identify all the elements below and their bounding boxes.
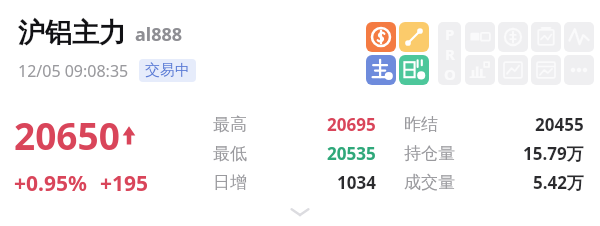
button[interactable]: 最低	[196, 139, 392, 168]
staticText: +0.95%	[14, 169, 87, 198]
staticText: 日增	[213, 172, 247, 193]
button[interactable]: Tool	[498, 22, 528, 52]
button[interactable]: 持仓量	[392, 139, 600, 168]
staticText: 20535	[327, 142, 376, 165]
button[interactable]: PRO	[438, 22, 461, 85]
staticText: 成交量	[404, 172, 455, 193]
staticText: 12/05 09:08:35	[18, 60, 129, 82]
button[interactable]: 成交量	[392, 168, 600, 197]
staticText: +195	[100, 169, 149, 198]
staticText: 5.42万	[533, 171, 584, 194]
staticText: 最低	[213, 143, 247, 164]
staticText: 最高	[213, 114, 247, 135]
button[interactable]: Tool	[465, 55, 495, 85]
button[interactable]: Quick action	[366, 22, 396, 52]
button[interactable]: Tool	[531, 22, 561, 52]
staticText: R	[445, 44, 455, 64]
staticText: 交易中	[145, 61, 190, 80]
button[interactable]: Tool	[531, 55, 561, 85]
button[interactable]: Tool	[465, 22, 495, 52]
staticText: P	[445, 24, 455, 44]
staticText: 15.79万	[523, 142, 584, 165]
button[interactable]: 最高	[196, 110, 392, 139]
button[interactable]: Tool	[564, 55, 594, 85]
button[interactable]: 日增	[196, 168, 392, 197]
button[interactable]: Quick action	[366, 55, 396, 85]
staticText: 1034	[337, 171, 376, 194]
staticText: 20695	[327, 113, 376, 136]
button[interactable]: Quick action	[399, 55, 429, 85]
button[interactable]: 昨结	[392, 110, 600, 139]
button[interactable]: Quick action	[399, 22, 429, 52]
staticText: 沪铝主力	[18, 16, 126, 50]
staticText: O	[444, 64, 456, 84]
staticText: 昨结	[404, 114, 438, 135]
button[interactable]: 交易中	[139, 59, 196, 82]
staticText: 20455	[535, 113, 584, 136]
staticText: al888	[135, 22, 183, 47]
button[interactable]: Expand	[279, 202, 321, 222]
button[interactable]: Tool	[564, 22, 594, 52]
staticText: 20650	[14, 110, 120, 160]
button[interactable]: Tool	[498, 55, 528, 85]
staticText: 持仓量	[404, 143, 455, 164]
